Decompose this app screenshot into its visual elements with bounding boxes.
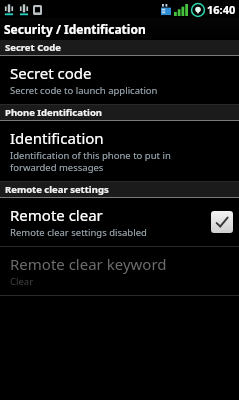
staticText: Remote clear settings disabled: [10, 226, 147, 239]
button[interactable]: Remote clear toggle: [211, 211, 233, 233]
staticText: Phone Identification: [5, 106, 103, 119]
button[interactable]: Secret code: [0, 56, 239, 104]
staticText: Remote clear: [10, 205, 103, 225]
staticText: Identification of this phone to put in f…: [10, 149, 171, 174]
staticText: Remote clear keyword: [10, 254, 167, 274]
staticText: Secret code: [10, 63, 92, 83]
button[interactable]: Remote clear: [0, 198, 239, 246]
staticText: Security / Identification: [4, 21, 146, 37]
staticText: Clear: [10, 275, 34, 288]
staticText: 16:40: [207, 2, 236, 17]
button[interactable]: Remote clear keyword: [0, 247, 239, 295]
staticText: Secret Code: [5, 41, 61, 54]
staticText: Secret code to launch application: [10, 84, 158, 97]
staticText: Remote clear settings: [5, 183, 109, 196]
staticText: Identification: [10, 128, 104, 148]
button[interactable]: Identification: [0, 121, 239, 181]
